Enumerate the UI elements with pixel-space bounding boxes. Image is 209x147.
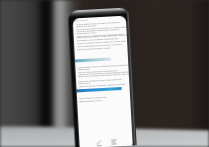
staticText: Duis aute irure dolor in reprehenderit v… (77, 33, 127, 38)
button[interactable] (77, 87, 122, 92)
staticText: Excepteur sint occaecat cupidatat non (77, 36, 119, 41)
button[interactable] (75, 57, 111, 62)
staticText: Reprehenderit qui in (79, 98, 102, 102)
staticText: Quia non numquam eius modi tempora incid… (78, 77, 129, 88)
button[interactable]: Edit (95, 139, 103, 146)
staticText: Neque porro quisquam est qui dolorem ips… (78, 70, 129, 78)
staticText: Sed ut perspiciatis unde omnis iste natu… (77, 42, 123, 47)
staticText: 9:41 Notes ▾ (75, 19, 88, 22)
staticText: Sed quia consequuntur magni (77, 45, 111, 50)
staticText: Lorem ipsum dolor sit amet consectetur a… (76, 20, 126, 31)
staticText: Sunt in culpa qui officia deserunt molli… (77, 39, 127, 44)
staticText: Nemo enim ipsam voluptatem quia voluptas… (77, 63, 129, 74)
staticText: Quis autem vel eum iure (79, 95, 106, 99)
button[interactable]: List (110, 138, 118, 146)
button[interactable]: Phone on a desk showing a checklist app (0, 0, 209, 147)
staticText: Ut enim ad minim veniam quis nostrud exe… (76, 27, 127, 38)
